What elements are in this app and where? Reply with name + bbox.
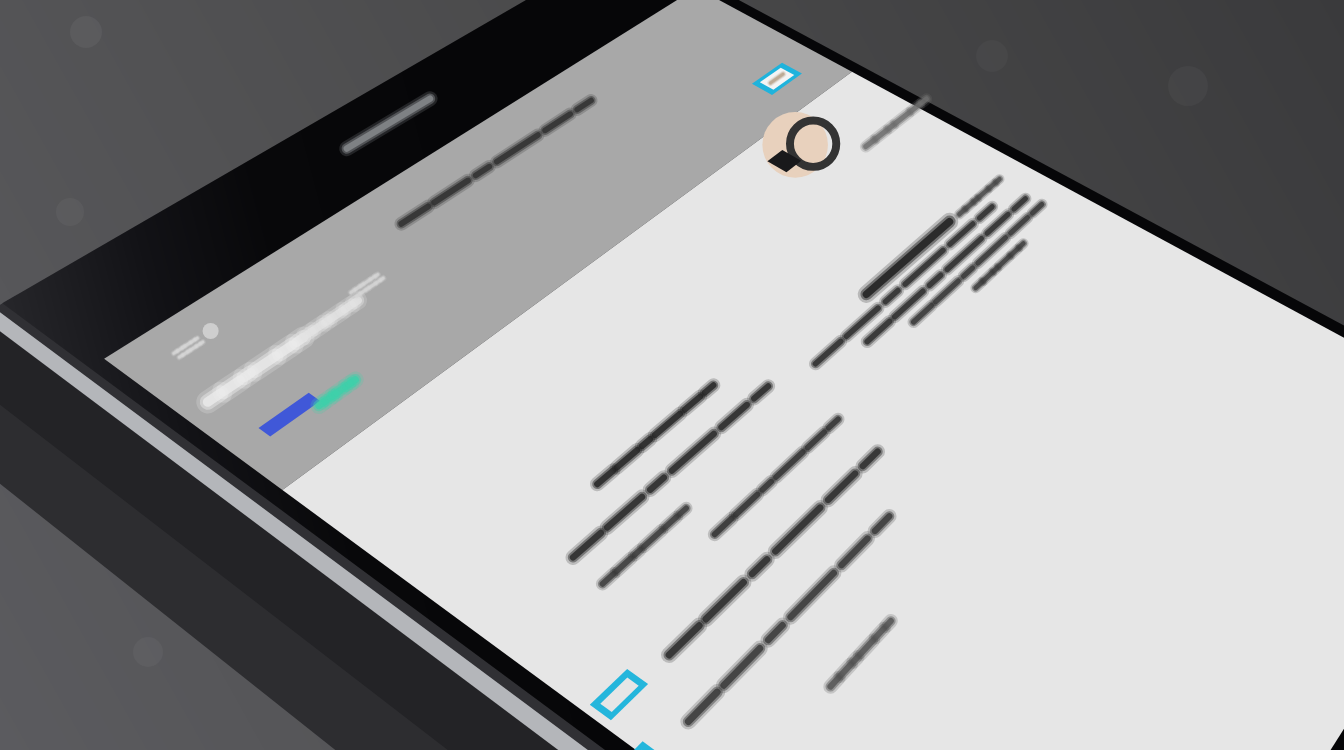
button[interactable]: Phone app screen [0,0,1344,750]
